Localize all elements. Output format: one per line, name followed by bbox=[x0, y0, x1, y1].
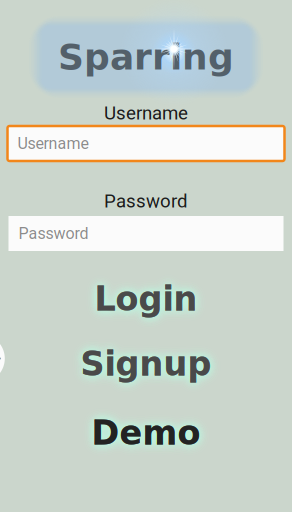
staticText: Login bbox=[94, 280, 197, 318]
staticText: Password bbox=[104, 190, 188, 212]
button[interactable]: Password bbox=[8, 216, 283, 251]
button[interactable]: Demo bbox=[0, 411, 292, 455]
button[interactable]: Username bbox=[7, 126, 284, 161]
staticText: Login bbox=[94, 280, 197, 318]
button[interactable]: Login bbox=[0, 277, 292, 321]
staticText: Signup bbox=[80, 345, 211, 383]
staticText: Demo bbox=[91, 414, 200, 452]
staticText: Username bbox=[104, 102, 188, 124]
staticText: Login bbox=[94, 280, 197, 318]
staticText: Demo bbox=[91, 414, 200, 452]
staticText: Signup bbox=[80, 345, 211, 383]
button[interactable]: Signup bbox=[0, 342, 292, 386]
staticText: Username bbox=[17, 134, 88, 153]
staticText: Signup bbox=[80, 345, 211, 383]
staticText: Password bbox=[18, 224, 88, 243]
staticText: Demo bbox=[91, 414, 200, 452]
staticText: Sparring bbox=[58, 36, 234, 78]
